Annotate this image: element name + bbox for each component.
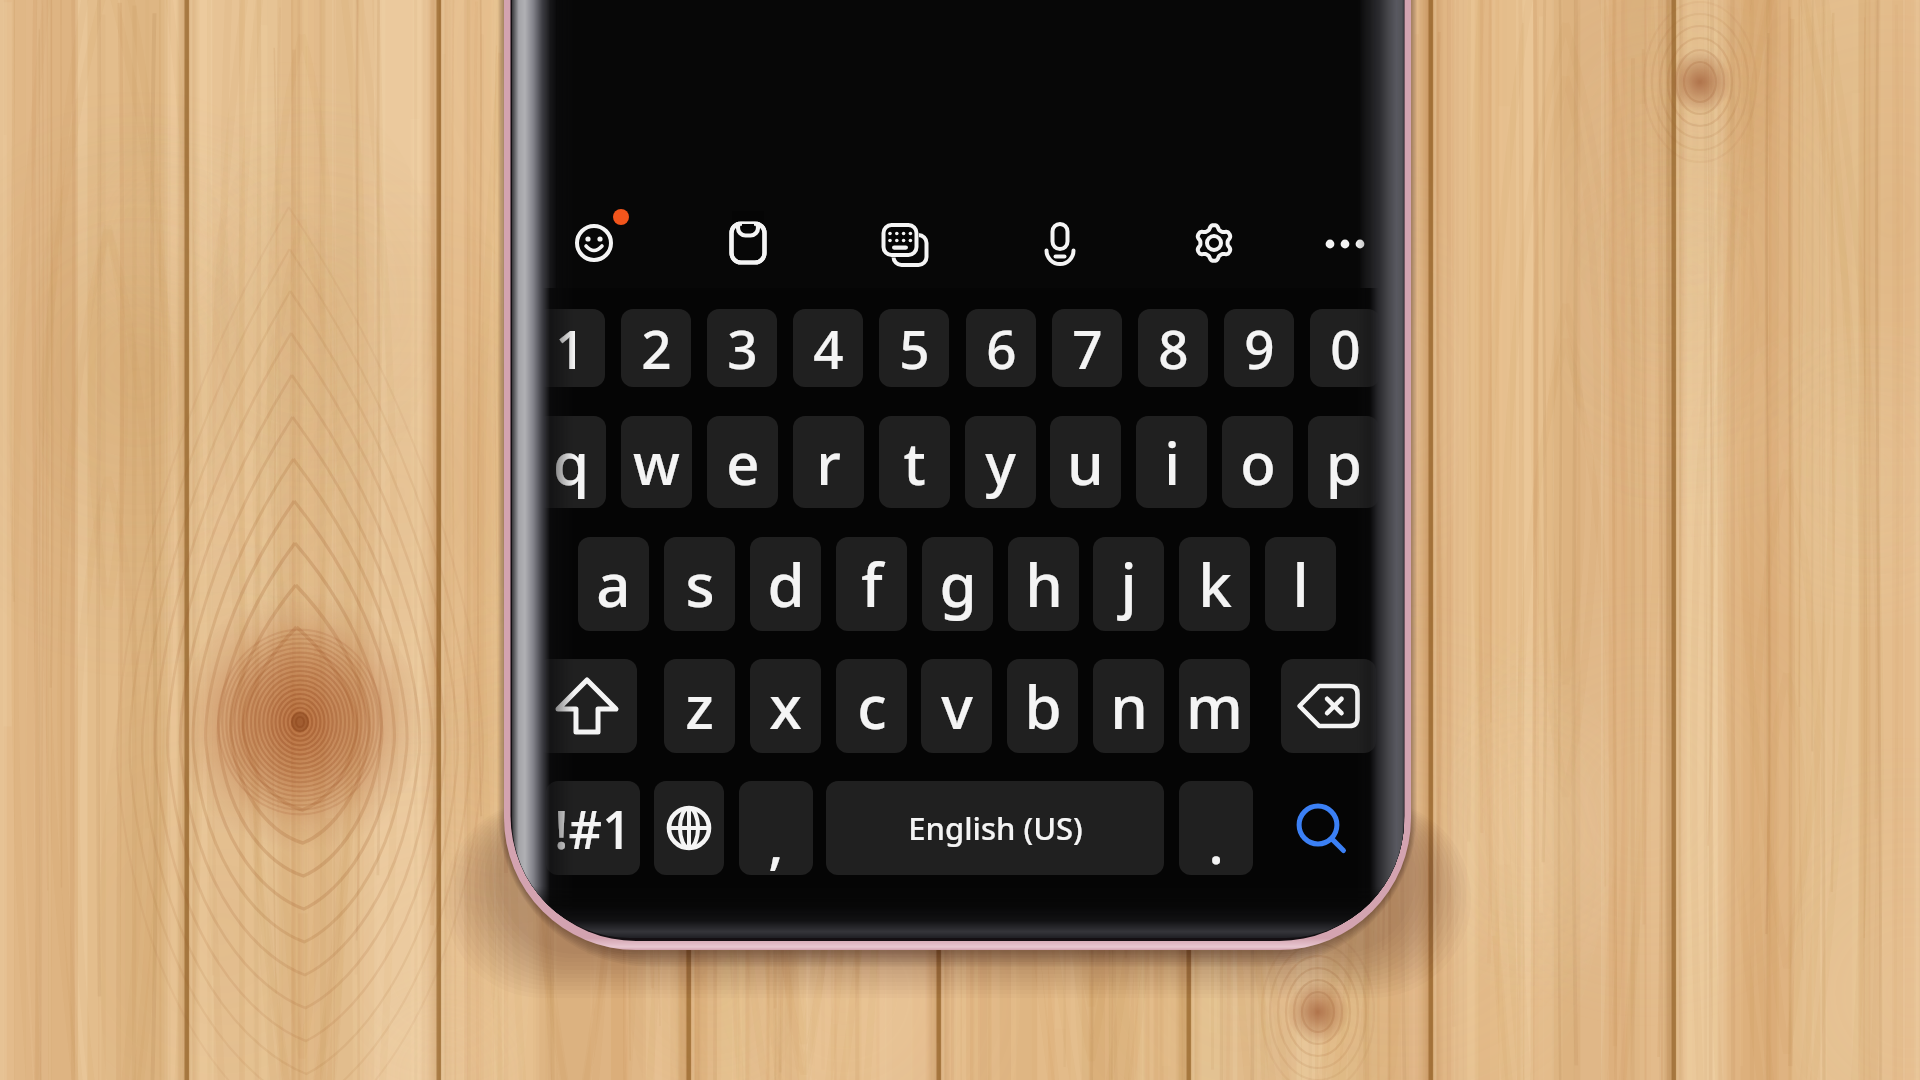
staticText: r — [816, 423, 841, 502]
staticText: !#1 — [554, 793, 632, 864]
button[interactable]: i — [1136, 416, 1207, 508]
button[interactable]: u — [1050, 416, 1121, 508]
staticText: l — [1292, 543, 1309, 625]
staticText: e — [726, 423, 760, 502]
staticText: s — [685, 543, 715, 625]
button[interactable]: a — [578, 537, 649, 631]
button[interactable]: 9 — [1224, 309, 1294, 387]
button[interactable]: 6 — [966, 309, 1036, 387]
button[interactable]: English (US) — [826, 781, 1164, 875]
button[interactable]: e — [707, 416, 778, 508]
staticText: , — [768, 804, 784, 875]
staticText: 0 — [1330, 312, 1361, 384]
button[interactable]: x — [750, 659, 821, 753]
button[interactable]: h — [1008, 537, 1079, 631]
staticText: t — [903, 423, 926, 502]
button[interactable]: 0 — [1310, 309, 1380, 387]
button[interactable]: 8 — [1138, 309, 1208, 387]
button[interactable]: k — [1179, 537, 1250, 631]
staticText: 8 — [1158, 312, 1189, 384]
button[interactable]: t — [879, 416, 950, 508]
staticText: y — [985, 423, 1016, 502]
button[interactable]: w — [621, 416, 692, 508]
staticText: 7 — [1072, 312, 1103, 384]
staticText: 9 — [1244, 312, 1275, 384]
button[interactable]: v — [921, 659, 992, 753]
staticText: 6 — [986, 312, 1017, 384]
staticText: 5 — [899, 312, 930, 384]
button[interactable]: q — [535, 416, 606, 508]
button[interactable]: More options — [1314, 213, 1376, 275]
button[interactable]: 5 — [879, 309, 949, 387]
staticText: 4 — [813, 312, 844, 384]
staticText: i — [1164, 423, 1180, 502]
button[interactable]: s — [664, 537, 735, 631]
button[interactable]: Voice input — [1029, 212, 1091, 274]
staticText: English (US) — [908, 807, 1083, 849]
button[interactable]: o — [1222, 416, 1293, 508]
button[interactable]: Switch language — [654, 781, 724, 875]
button[interactable]: 2 — [621, 309, 691, 387]
button[interactable]: Settings — [1183, 212, 1245, 274]
staticText: a — [596, 543, 631, 625]
button[interactable]: p — [1308, 416, 1379, 508]
button[interactable]: c — [836, 659, 907, 753]
button[interactable]: Clipboard — [717, 212, 779, 274]
button[interactable]: 1 — [535, 309, 605, 387]
button[interactable]: !#1 — [546, 781, 640, 875]
staticText: p — [1326, 423, 1362, 502]
button[interactable]: r — [793, 416, 864, 508]
staticText: 3 — [727, 312, 758, 384]
button[interactable]: 7 — [1052, 309, 1122, 387]
button[interactable]: Keyboard modes — [872, 212, 934, 274]
staticText: d — [767, 543, 805, 625]
button[interactable]: f — [836, 537, 907, 631]
button[interactable]: b — [1007, 659, 1078, 753]
button[interactable]: z — [664, 659, 735, 753]
staticText: n — [1110, 665, 1148, 747]
button[interactable]: Search — [1280, 781, 1362, 875]
button[interactable]: l — [1265, 537, 1336, 631]
button[interactable]: Emoji — [563, 212, 625, 274]
button[interactable]: Shift — [537, 659, 637, 753]
button[interactable]: , — [739, 781, 813, 875]
staticText: z — [685, 665, 714, 747]
staticText: m — [1186, 665, 1243, 747]
staticText: u — [1067, 423, 1104, 502]
button[interactable]: 3 — [707, 309, 777, 387]
button[interactable]: m — [1179, 659, 1250, 753]
staticText: q — [553, 423, 589, 502]
button[interactable]: Backspace — [1281, 659, 1376, 753]
staticText: x — [769, 665, 802, 747]
staticText: 2 — [641, 312, 672, 384]
button[interactable]: 4 — [793, 309, 863, 387]
staticText: . — [1208, 804, 1224, 875]
button[interactable]: . — [1179, 781, 1253, 875]
staticText: j — [1120, 543, 1137, 625]
button[interactable]: n — [1093, 659, 1164, 753]
button[interactable]: d — [750, 537, 821, 631]
staticText: g — [939, 543, 977, 625]
staticText: c — [857, 665, 887, 747]
staticText: w — [633, 423, 680, 502]
staticText: h — [1025, 543, 1063, 625]
staticText: o — [1240, 423, 1276, 502]
staticText: v — [941, 665, 973, 747]
button[interactable]: g — [922, 537, 993, 631]
staticText: k — [1198, 543, 1232, 625]
staticText: b — [1024, 665, 1062, 747]
staticText: 1 — [555, 312, 586, 384]
staticText: f — [861, 543, 883, 625]
button[interactable]: y — [965, 416, 1036, 508]
button[interactable]: j — [1093, 537, 1164, 631]
